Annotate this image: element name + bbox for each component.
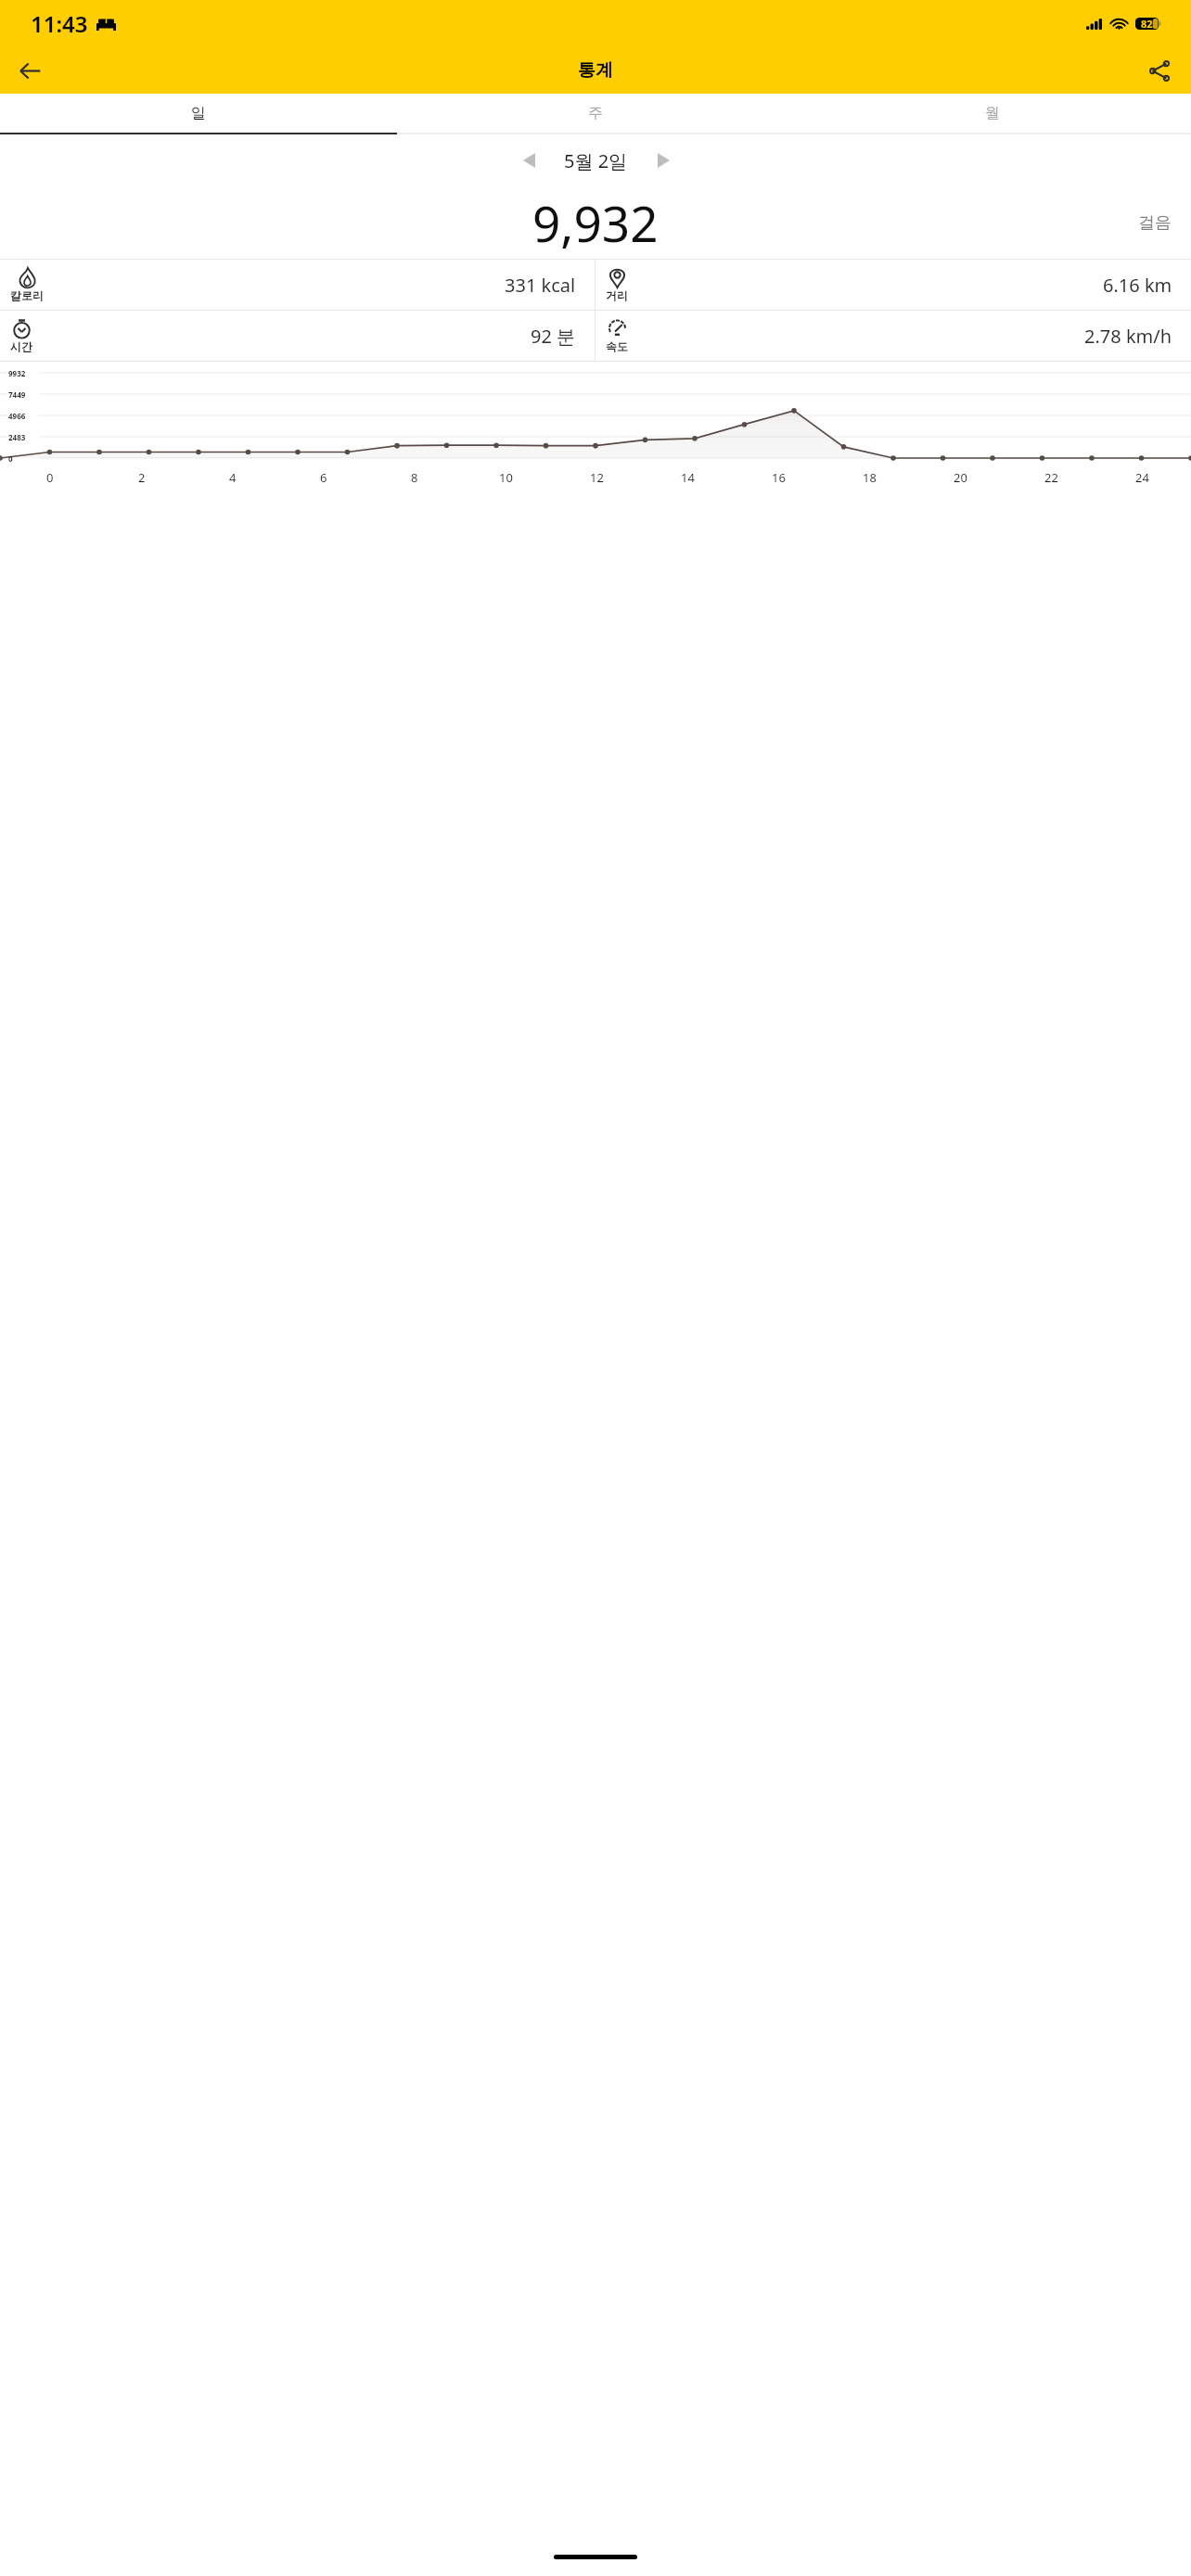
staticText: 16 xyxy=(772,469,786,486)
staticText: 칼로리 xyxy=(10,288,44,302)
staticText: 4966 xyxy=(8,411,26,421)
staticText: 11:43 xyxy=(31,8,88,39)
staticText: 24 xyxy=(1135,469,1149,486)
staticText: 18 xyxy=(863,469,877,486)
staticText: 8 xyxy=(411,469,418,486)
staticText: 2 xyxy=(138,469,146,486)
staticText: 0 xyxy=(8,453,13,464)
staticText: 주 xyxy=(588,104,603,122)
button[interactable]: Share xyxy=(1137,48,1182,93)
staticText: 92 분 xyxy=(531,324,576,349)
staticText: 6.16 km xyxy=(1103,273,1172,298)
staticText: 14 xyxy=(681,469,695,486)
staticText: 2483 xyxy=(8,432,26,442)
staticText: 9932 xyxy=(8,368,26,378)
staticText: 거리 xyxy=(606,288,628,302)
staticText: 82 xyxy=(1141,17,1153,31)
staticText: 통계 xyxy=(578,59,613,82)
staticText: 10 xyxy=(499,469,513,486)
button[interactable]: 주 xyxy=(397,94,794,133)
staticText: 2.78 km/h xyxy=(1084,324,1172,349)
button[interactable]: 시간 xyxy=(0,311,595,361)
button[interactable]: 속도 xyxy=(595,311,1191,361)
staticText: 6 xyxy=(320,469,327,486)
button[interactable]: Back xyxy=(7,48,52,93)
staticText: 7449 xyxy=(8,389,26,400)
staticText: 5월 2일 xyxy=(564,148,628,173)
staticText: 20 xyxy=(954,469,967,486)
button[interactable]: Next day xyxy=(643,140,684,181)
staticText: 0 xyxy=(46,469,54,486)
staticText: 22 xyxy=(1044,469,1058,486)
staticText: 걸음 xyxy=(1138,212,1172,234)
button[interactable]: 일 xyxy=(0,94,397,133)
button[interactable]: 거리 xyxy=(595,260,1191,310)
button[interactable]: 월 xyxy=(794,94,1191,133)
staticText: 331 kcal xyxy=(505,273,576,298)
button[interactable]: Previous day xyxy=(508,140,549,181)
staticText: 월 xyxy=(985,104,1000,122)
staticText: 9,932 xyxy=(532,189,659,256)
button[interactable]: 칼로리 xyxy=(0,260,595,310)
staticText: 4 xyxy=(229,469,237,486)
staticText: 일 xyxy=(191,104,206,122)
staticText: 속도 xyxy=(606,339,628,353)
staticText: 12 xyxy=(590,469,604,486)
staticText: 시간 xyxy=(10,339,32,353)
